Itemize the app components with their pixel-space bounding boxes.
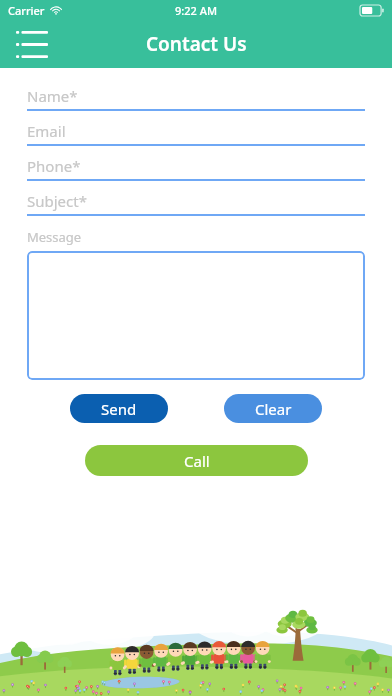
button[interactable]: Send	[70, 394, 168, 423]
button[interactable]: Menu	[10, 22, 54, 66]
staticText: Email	[27, 121, 66, 141]
staticText: Send	[101, 399, 137, 419]
staticText: Clear	[255, 399, 292, 419]
staticText: Subject*	[27, 191, 87, 211]
button[interactable]: Call	[85, 445, 308, 476]
button[interactable]: Subject*	[27, 187, 365, 222]
staticText: Call	[184, 451, 210, 471]
button[interactable]	[27, 251, 365, 380]
staticText: Message	[27, 228, 82, 246]
button[interactable]: Phone*	[27, 152, 365, 187]
staticText: 9:22 AM	[175, 3, 218, 18]
staticText: Phone*	[27, 156, 81, 176]
staticText: Carrier	[8, 3, 45, 18]
button[interactable]: Name*	[27, 82, 365, 117]
button[interactable]: Email	[27, 117, 365, 152]
staticText: Name*	[27, 86, 78, 106]
button[interactable]: Clear	[224, 394, 322, 423]
staticText: Contact Us	[146, 31, 247, 57]
